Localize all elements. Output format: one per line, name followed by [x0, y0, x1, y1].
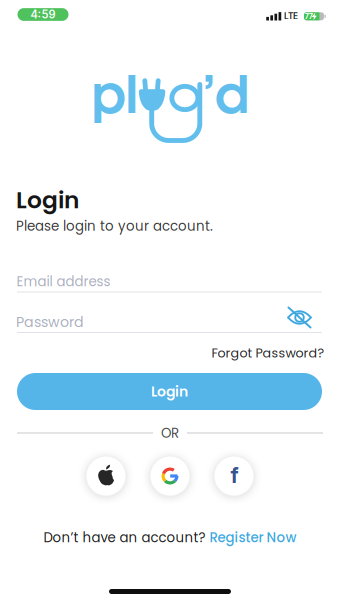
button[interactable]: Forgot Password? — [211, 344, 324, 362]
button[interactable]: Sign in with Apple — [86, 456, 126, 496]
staticText: Login — [16, 184, 79, 216]
staticText: Email address — [16, 272, 110, 291]
staticText: Please login to your account. — [16, 217, 213, 235]
button[interactable]: Login — [17, 373, 322, 410]
staticText: 4:59 — [30, 8, 55, 21]
staticText: f — [230, 463, 238, 488]
staticText: Login — [151, 382, 188, 401]
button[interactable]: Sign in with Google — [150, 456, 190, 496]
staticText: OR — [161, 424, 179, 442]
staticText: 77 — [305, 12, 313, 21]
button[interactable]: Register Now — [209, 528, 296, 547]
staticText: ’d — [202, 75, 249, 123]
staticText: Forgot Password? — [211, 344, 324, 362]
staticText: pl — [92, 75, 138, 123]
button[interactable]: Show password — [286, 307, 313, 328]
staticText: Don’t have an account? — [43, 528, 205, 547]
staticText: Password — [16, 312, 84, 332]
staticText: Register Now — [209, 528, 296, 547]
staticText: LTE — [284, 11, 298, 21]
button[interactable]: Sign in with Facebook — [214, 456, 254, 496]
